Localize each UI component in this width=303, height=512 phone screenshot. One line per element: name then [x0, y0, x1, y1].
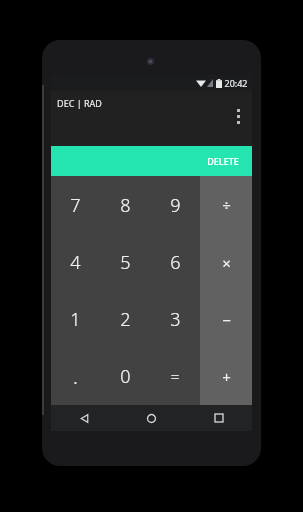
staticText: 5: [120, 250, 131, 275]
button[interactable]: 5: [100, 234, 150, 291]
staticText: 7: [70, 193, 81, 218]
staticText: 20:42: [224, 77, 248, 89]
button[interactable]: =: [150, 348, 200, 405]
staticText: 6: [170, 250, 181, 275]
button[interactable]: −: [200, 291, 252, 348]
button[interactable]: 6: [150, 234, 200, 291]
button[interactable]: 4: [51, 234, 100, 291]
staticText: DELETE: [207, 155, 239, 167]
button[interactable]: 8: [100, 176, 150, 234]
button[interactable]: ÷: [200, 176, 252, 234]
button[interactable]: .: [51, 348, 100, 405]
staticText: 0: [120, 364, 131, 389]
button[interactable]: 7: [51, 176, 100, 234]
button[interactable]: DEC | RAD: [55, 94, 104, 112]
button[interactable]: 9: [150, 176, 200, 234]
staticText: 1: [70, 307, 81, 332]
staticText: 3: [170, 307, 181, 332]
staticText: ×: [222, 253, 231, 273]
button[interactable]: 2: [100, 291, 150, 348]
button[interactable]: 3: [150, 291, 200, 348]
button[interactable]: DELETE: [51, 146, 252, 176]
button[interactable]: Back: [51, 405, 118, 431]
staticText: =: [170, 366, 180, 388]
staticText: 9: [170, 193, 181, 218]
button[interactable]: Recent apps: [185, 405, 252, 431]
staticText: DEC | RAD: [57, 97, 102, 109]
staticText: 4: [70, 250, 81, 275]
button[interactable]: 1: [51, 291, 100, 348]
staticText: .: [73, 363, 78, 390]
staticText: +: [222, 367, 231, 387]
button[interactable]: ×: [200, 234, 252, 291]
staticText: ÷: [222, 195, 231, 215]
staticText: −: [222, 310, 231, 330]
button[interactable]: +: [200, 348, 252, 405]
button[interactable]: 0: [100, 348, 150, 405]
staticText: 8: [120, 193, 131, 218]
button[interactable]: Home: [118, 405, 185, 431]
staticText: 2: [120, 307, 131, 332]
button[interactable]: More options: [228, 103, 248, 129]
